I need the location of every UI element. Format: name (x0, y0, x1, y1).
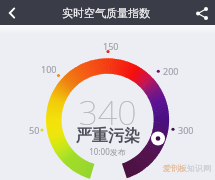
staticText: 实时空气质量指数 (62, 6, 150, 20)
staticText: 50 (29, 124, 40, 136)
staticText: 爱剖板 (163, 163, 187, 173)
staticText: 严重污染 (76, 126, 140, 146)
staticText: 150 (103, 40, 119, 52)
staticText: 200 (163, 65, 179, 77)
staticText: 10:00发布 (89, 146, 126, 157)
staticText: 340 (78, 89, 137, 135)
staticText: 100 (41, 63, 57, 75)
button[interactable]: Share (188, 0, 215, 26)
button[interactable]: Back (0, 0, 24, 26)
staticText: 知识网 (187, 163, 211, 173)
staticText: 300 (178, 124, 194, 136)
